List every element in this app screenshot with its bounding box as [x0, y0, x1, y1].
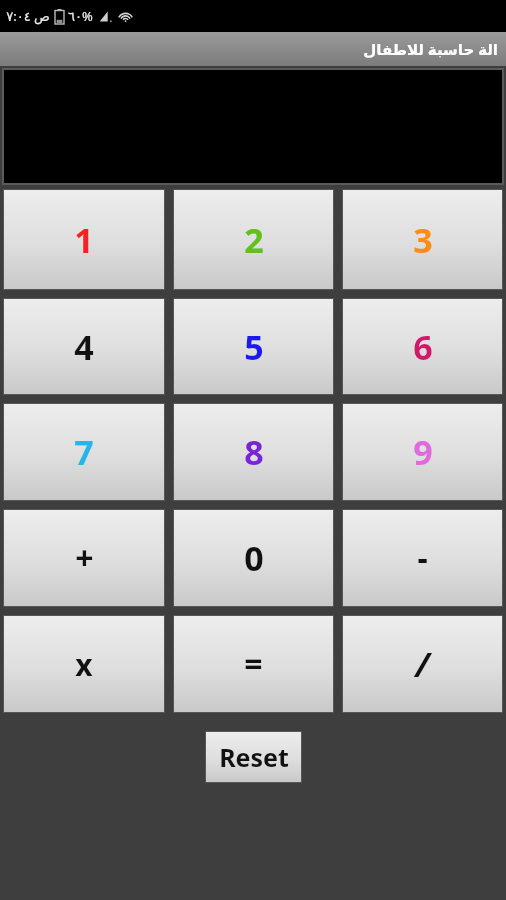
button[interactable]: 1 [3, 189, 165, 290]
button[interactable]: x [3, 615, 165, 713]
staticText: 8 [244, 429, 264, 475]
staticText: 7 [74, 429, 94, 475]
button[interactable]: 7 [3, 403, 165, 501]
button[interactable]: + [3, 509, 165, 607]
staticText: 1 [74, 217, 94, 263]
staticText: - [417, 536, 428, 580]
button[interactable]: 3 [342, 189, 503, 290]
button[interactable]: - [342, 509, 503, 607]
button[interactable]: 4 [3, 298, 165, 395]
staticText: 6 [413, 324, 433, 370]
button[interactable]: 9 [342, 403, 503, 501]
staticText: + [75, 536, 94, 580]
staticText: ص ٧:٠٤ [6, 7, 50, 25]
staticText: 0 [244, 535, 264, 581]
staticText: الة حاسبة للاطفال [363, 39, 498, 59]
button[interactable]: Reset [205, 731, 302, 783]
staticText: ٦٠% [68, 7, 93, 25]
button[interactable]: 2 [173, 189, 334, 290]
staticText: = [244, 642, 263, 686]
button[interactable]: / [342, 615, 503, 713]
button[interactable]: 0 [173, 509, 334, 607]
staticText: 2 [244, 217, 264, 263]
staticText: 4 [74, 324, 94, 370]
button[interactable]: = [173, 615, 334, 713]
staticText: x [75, 644, 93, 685]
staticText: 3 [413, 217, 433, 263]
staticText: / [415, 641, 430, 687]
button[interactable]: 8 [173, 403, 334, 501]
button[interactable]: 5 [173, 298, 334, 395]
staticText: 5 [244, 324, 264, 370]
staticText: 9 [413, 429, 433, 475]
staticText: Reset [219, 740, 289, 774]
button[interactable]: 6 [342, 298, 503, 395]
